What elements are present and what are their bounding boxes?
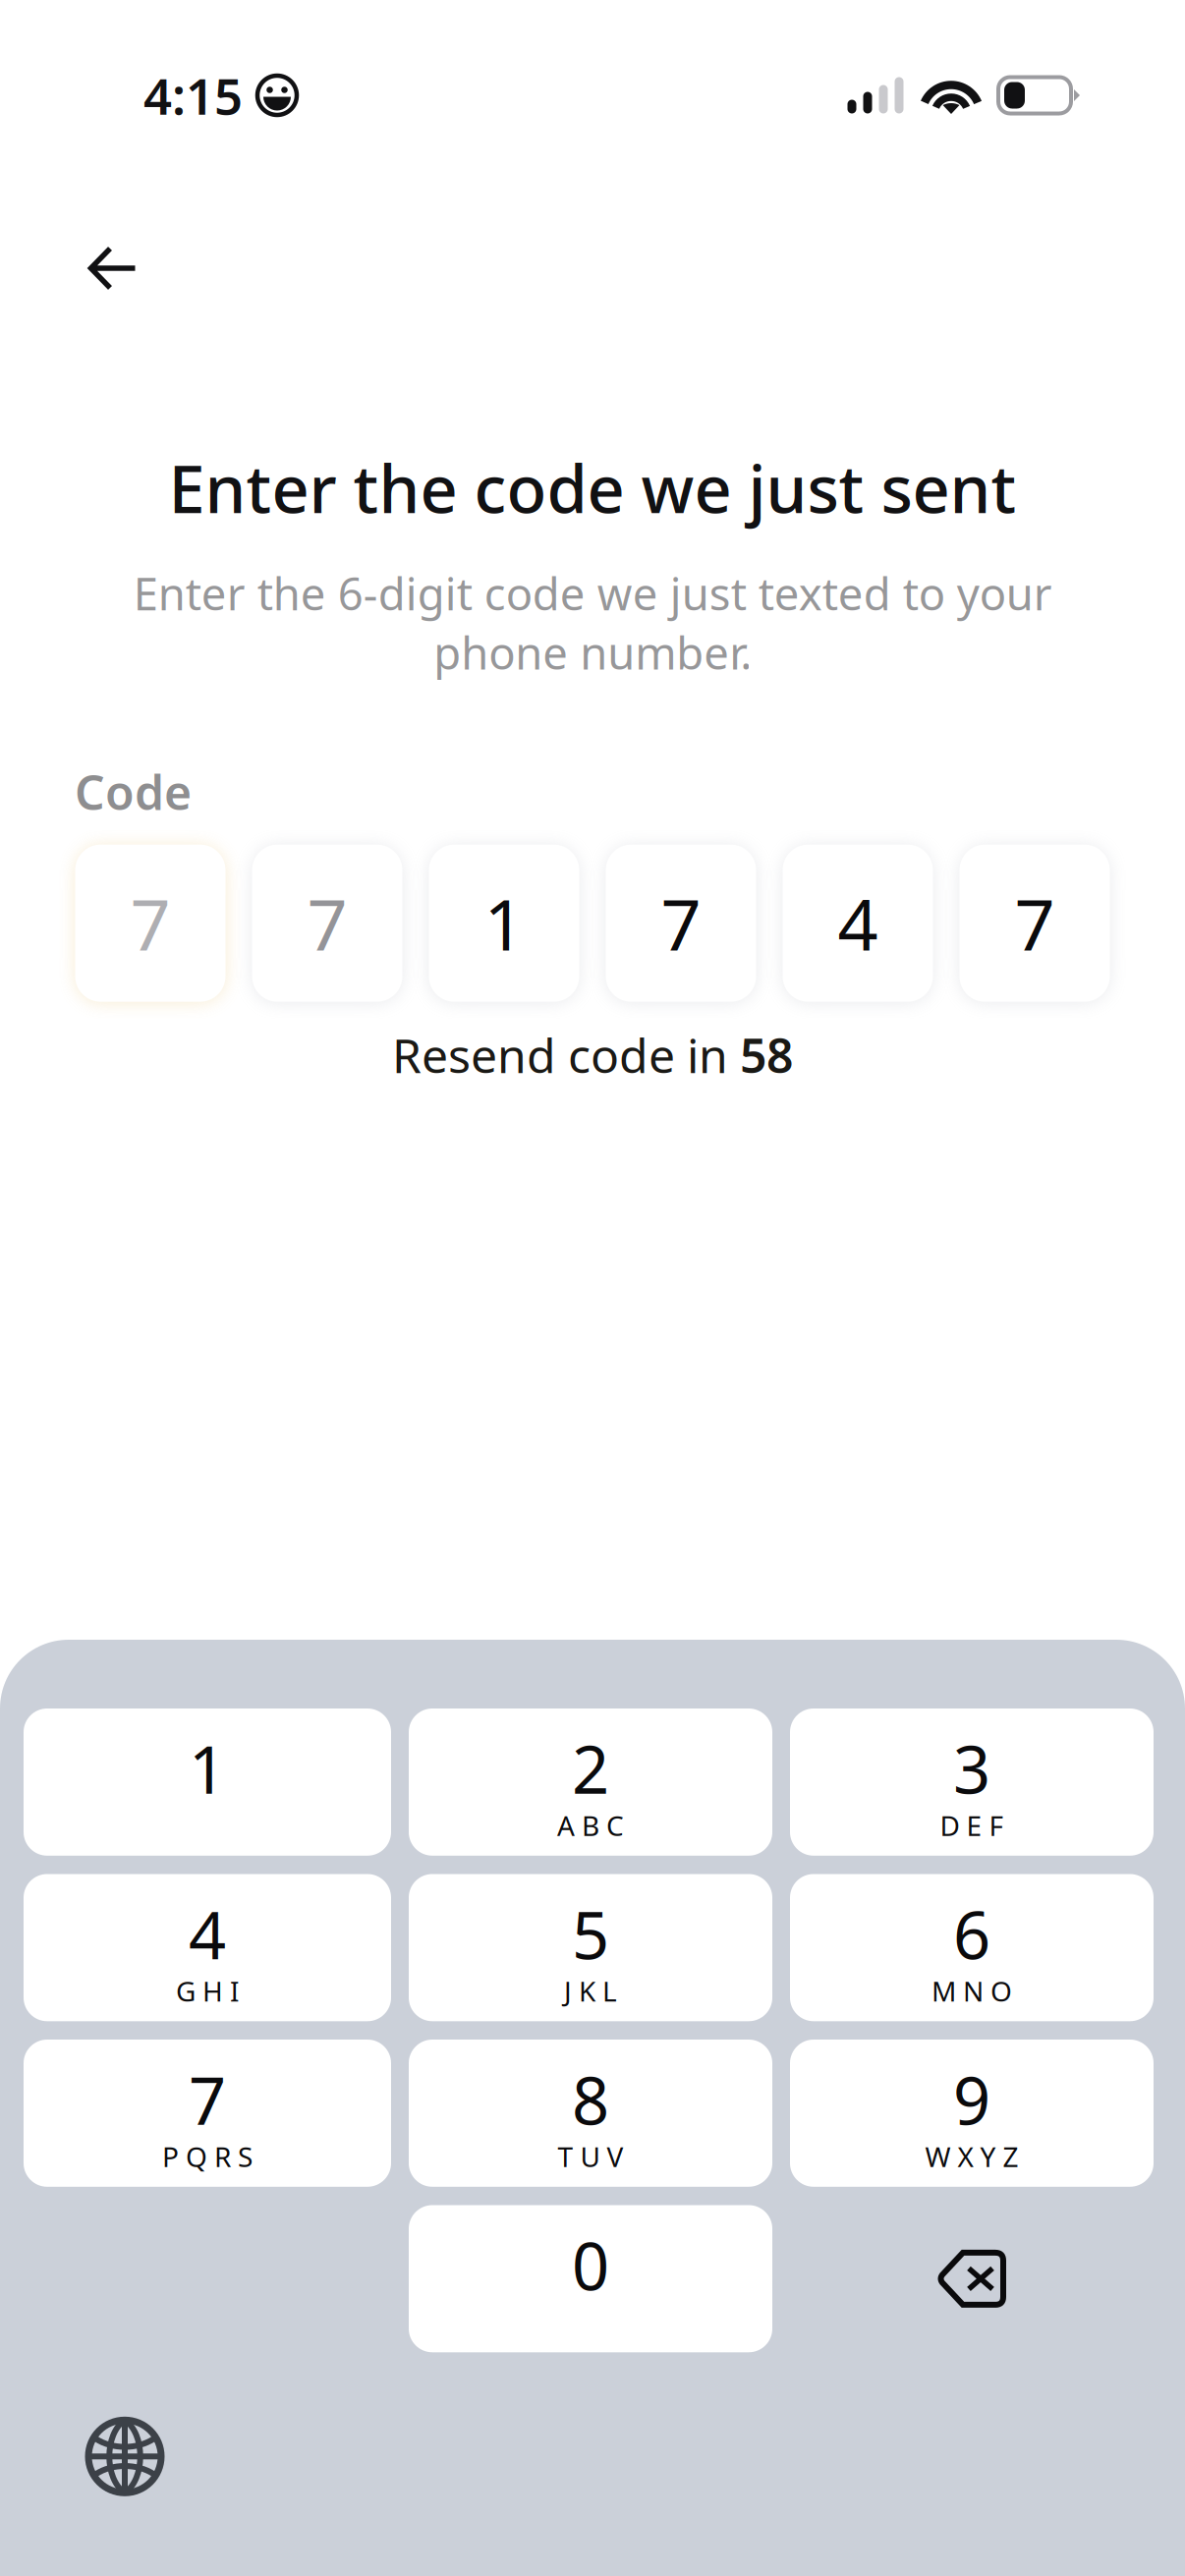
button[interactable]: 4 xyxy=(783,845,933,1002)
button[interactable]: 7 xyxy=(606,845,756,1002)
button[interactable]: Resend code in 58 xyxy=(392,1002,793,1086)
staticText: M N O xyxy=(931,1973,1012,2009)
staticText: 6 xyxy=(953,1890,990,1977)
staticText: A B C xyxy=(557,1807,624,1844)
staticText: G H I xyxy=(176,1973,239,2009)
staticText: D E F xyxy=(940,1807,1004,1844)
staticText: T U V xyxy=(558,2138,623,2175)
staticText: 7 xyxy=(130,876,170,970)
staticText: 2 xyxy=(572,1725,609,1812)
button[interactable]: 9 xyxy=(790,2040,1154,2187)
button[interactable]: 7 xyxy=(252,845,402,1002)
button[interactable]: 8 xyxy=(409,2040,772,2187)
staticText: 8 xyxy=(572,2056,609,2143)
staticText: Resend code in 58 xyxy=(392,1023,793,1086)
button[interactable]: Next keyboard xyxy=(66,2397,184,2515)
staticText: 3 xyxy=(953,1725,990,1812)
staticText: W X Y Z xyxy=(925,2138,1018,2175)
staticText: 7 xyxy=(189,2056,226,2143)
button[interactable]: Back xyxy=(67,224,159,312)
staticText: 7 xyxy=(1015,876,1055,970)
staticText: 1 xyxy=(484,876,524,970)
staticText: P Q R S xyxy=(162,2138,253,2175)
button[interactable]: 3 xyxy=(790,1708,1154,1856)
button[interactable]: 5 xyxy=(409,1874,772,2021)
staticText: Enter the 6-digit code we just texted to… xyxy=(133,563,1052,682)
staticText: 7 xyxy=(661,876,701,970)
button[interactable]: 7 xyxy=(75,845,226,1002)
staticText: 5 xyxy=(572,1890,609,1977)
button[interactable]: 1 xyxy=(429,845,579,1002)
staticText: 4 xyxy=(838,876,878,970)
button[interactable]: 1 xyxy=(24,1708,391,1856)
staticText: 0 xyxy=(572,2221,609,2308)
button[interactable]: 7 xyxy=(24,2040,391,2187)
staticText: J K L xyxy=(564,1973,617,2009)
staticText: 4 xyxy=(189,1890,226,1977)
button[interactable]: 7 xyxy=(959,845,1110,1002)
button[interactable]: 0 xyxy=(409,2205,772,2352)
staticText: 4:15 xyxy=(143,62,243,128)
button[interactable]: 6 xyxy=(790,1874,1154,2021)
staticText: 7 xyxy=(307,876,347,970)
staticText: 1 xyxy=(189,1725,226,1812)
button[interactable]: Delete xyxy=(790,2205,1154,2352)
staticText: Enter the code we just sent xyxy=(169,444,1016,531)
staticText: Code xyxy=(75,760,192,823)
button[interactable]: 2 xyxy=(409,1708,772,1856)
button[interactable]: 4 xyxy=(24,1874,391,2021)
staticText: 9 xyxy=(953,2056,990,2143)
